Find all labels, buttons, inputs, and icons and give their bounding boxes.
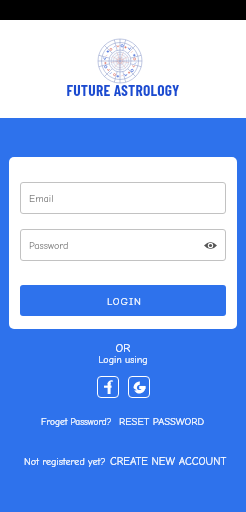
button[interactable]: Email (20, 182, 226, 214)
other: Show password (204, 241, 217, 250)
button[interactable]: Sign in with Facebook (97, 376, 119, 398)
staticText: LOGIN (107, 296, 142, 308)
staticText: CREATE NEW ACCOUNT (110, 455, 227, 468)
button[interactable]: RESET PASSWORD (119, 416, 205, 428)
staticText: OR (0, 341, 246, 355)
staticText: Email (29, 193, 54, 205)
staticText: Froget Password? (41, 417, 112, 428)
button[interactable]: LOGIN (20, 285, 226, 316)
staticText: Not registered yet? (24, 456, 106, 468)
staticText: Login using (0, 354, 246, 366)
staticText: FUTURE ASTROLOGY (0, 80, 246, 99)
button[interactable]: CREATE NEW ACCOUNT (110, 455, 227, 468)
button[interactable]: Password (20, 229, 226, 261)
button[interactable]: Sign in with Google (128, 376, 150, 398)
staticText: Password (29, 240, 69, 252)
staticText: RESET PASSWORD (119, 416, 205, 428)
